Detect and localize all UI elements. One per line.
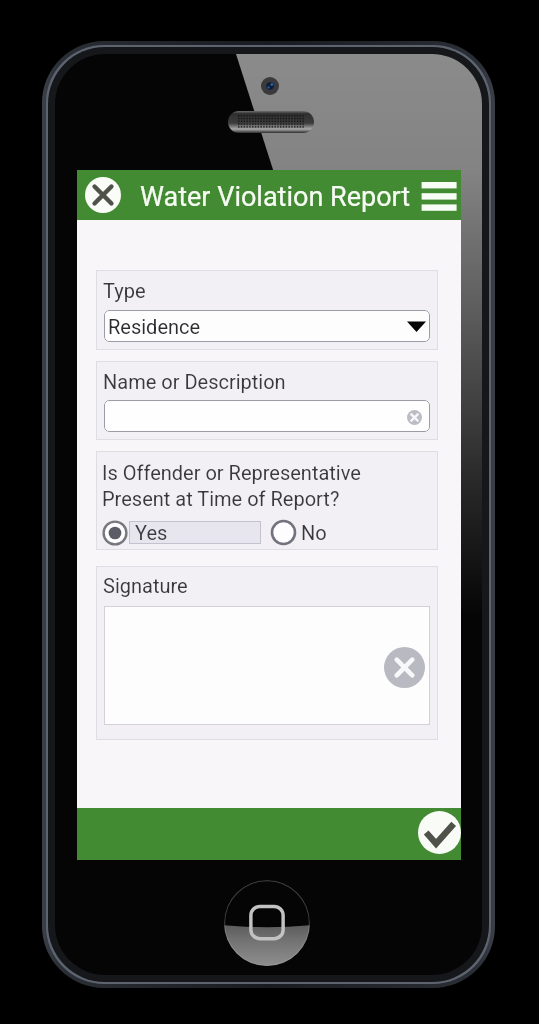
staticText: Residence — [108, 315, 201, 338]
staticText: Type — [103, 279, 146, 302]
staticText: Is Offender or Representative Present at… — [102, 461, 361, 510]
button[interactable]: Clear text — [104, 400, 430, 432]
button[interactable]: Submit report — [418, 811, 461, 854]
button[interactable]: Close — [85, 177, 121, 213]
button[interactable]: Home — [224, 880, 310, 966]
button[interactable]: Residence — [104, 310, 430, 342]
staticText: Signature — [103, 574, 188, 597]
staticText: No — [301, 521, 327, 544]
staticText: Yes — [135, 521, 168, 544]
button[interactable]: Clear text — [407, 410, 422, 425]
button[interactable]: Menu — [417, 176, 457, 214]
button[interactable]: Clear signature — [384, 647, 425, 688]
staticText: Name or Description — [103, 370, 286, 393]
button[interactable]: No — [270, 519, 297, 546]
staticText: Water Violation Report — [140, 181, 411, 213]
button[interactable]: Yes — [102, 520, 128, 546]
